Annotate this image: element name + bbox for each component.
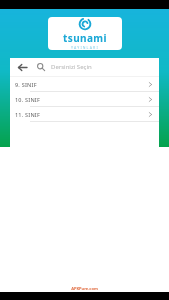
button[interactable]: 10. SINIF	[10, 92, 159, 106]
staticText: 11. SINIF	[15, 111, 41, 118]
button[interactable]: 9. SINIF	[10, 77, 159, 91]
button[interactable]: 11. SINIF	[10, 107, 159, 121]
button[interactable]: Back	[10, 58, 159, 76]
staticText: YAYINLARI	[71, 45, 99, 50]
staticText: 9. SINIF	[15, 81, 37, 88]
button[interactable]: tsunami	[48, 17, 122, 50]
button[interactable]: Back	[15, 60, 29, 74]
other: Search	[35, 61, 47, 73]
staticText: 10. SINIF	[15, 96, 41, 103]
staticText: tsunami	[63, 31, 107, 45]
staticText: APKPure.com	[71, 286, 98, 291]
staticText: Dersinizi Seçin	[51, 63, 92, 71]
